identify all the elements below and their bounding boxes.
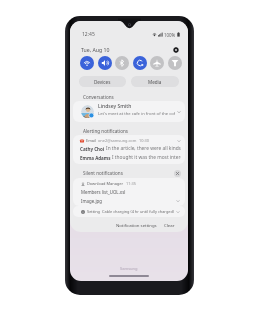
staticText: Lindsey Smith (98, 103, 132, 110)
staticText: Clear (164, 222, 175, 228)
button[interactable]: Airplane mode (150, 56, 164, 70)
staticText: one2@samsung.com (98, 138, 137, 143)
button[interactable]: Media (131, 76, 179, 87)
staticText: 12:45 (82, 31, 95, 38)
button[interactable]: Download Manager (73, 178, 185, 206)
button[interactable]: Bluetooth (115, 56, 129, 70)
button[interactable]: Setting (73, 206, 185, 217)
staticText: Let's meet at the cafe in front of the c… (98, 111, 175, 117)
button[interactable]: Clear (163, 221, 176, 229)
staticText: 10:30 (139, 138, 149, 143)
staticText: Members list_UOL.xsl (81, 189, 126, 195)
button[interactable]: Clear silent notifications (174, 170, 181, 177)
staticText: Silent notifications (83, 170, 123, 176)
staticText: Devices (94, 79, 111, 85)
button[interactable]: Settings (171, 45, 180, 54)
staticText: Download Manager (87, 181, 124, 186)
staticText: Image.jpg (81, 198, 102, 204)
button[interactable]: Email (73, 135, 185, 164)
staticText: Media (148, 79, 162, 85)
button[interactable]: Sound (98, 56, 112, 70)
staticText: Cathy Choi (80, 146, 105, 152)
button[interactable]: Wi-Fi (80, 56, 94, 70)
staticText: Conversations (83, 94, 114, 100)
button[interactable]: Lindsey Smith (73, 101, 185, 122)
button[interactable]: Devices (79, 76, 126, 87)
button[interactable]: Notification settings (115, 221, 158, 229)
staticText: Tue, Aug 10 (81, 46, 110, 53)
staticText: Emma Adams (80, 155, 111, 161)
staticText: In the article, there were all kinds of … (106, 145, 181, 152)
staticText: Samsung (120, 266, 138, 271)
staticText: Alerting notifications (83, 128, 128, 134)
staticText: Email (86, 138, 96, 143)
staticText: 11:35 (126, 181, 136, 186)
staticText: 100% (164, 32, 176, 38)
staticText: Notification settings (116, 222, 157, 228)
staticText: Setting (87, 209, 100, 214)
button[interactable]: Auto rotate (133, 56, 147, 70)
button[interactable]: Flashlight (168, 56, 182, 70)
staticText: I thought it was the most interesting th… (112, 154, 181, 161)
staticText: Cable charging (4 hr until fully charged… (102, 209, 175, 214)
